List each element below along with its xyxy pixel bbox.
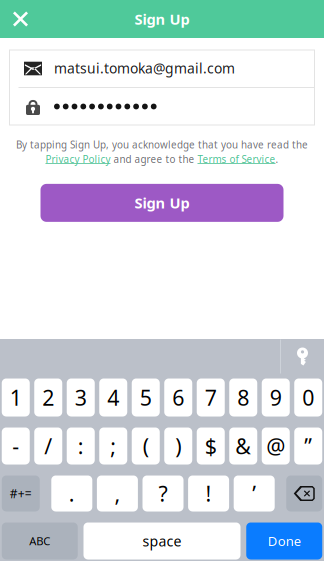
button[interactable]: space <box>83 522 240 559</box>
button[interactable]: ABC <box>2 522 78 559</box>
staticText: ? <box>158 479 167 508</box>
button[interactable]: ” <box>294 427 322 464</box>
staticText: 4 <box>107 383 119 412</box>
button[interactable]: Close <box>0 0 41 38</box>
button[interactable]: & <box>229 427 257 464</box>
button[interactable]: : <box>67 427 95 464</box>
staticText: 7 <box>205 383 217 412</box>
staticText: $ <box>205 431 217 461</box>
staticText: 8 <box>237 383 249 412</box>
button[interactable]: . <box>51 475 92 511</box>
staticText: Sign Up <box>134 193 189 213</box>
staticText: Done <box>268 532 301 550</box>
staticText: @ <box>266 431 285 461</box>
staticText: ’ <box>252 479 256 508</box>
staticText: / <box>44 431 52 461</box>
button[interactable]: / <box>34 427 62 464</box>
staticText: - <box>12 431 19 461</box>
button[interactable]: ! <box>188 475 229 511</box>
button[interactable]: Privacy Policy <box>45 152 110 166</box>
staticText: ( <box>143 431 149 461</box>
staticText: 9 <box>270 383 282 412</box>
staticText: : <box>78 431 84 461</box>
staticText: ” <box>304 431 312 461</box>
button[interactable]: $ <box>197 427 225 464</box>
staticText: 5 <box>140 383 152 412</box>
button[interactable]: 0 <box>294 378 322 416</box>
staticText: . <box>275 152 278 166</box>
button[interactable]: ( <box>132 427 160 464</box>
staticText: and agree to the <box>110 152 197 166</box>
staticText: Privacy Policy <box>45 152 110 166</box>
button[interactable]: ) <box>164 427 192 464</box>
staticText: & <box>235 431 251 461</box>
button[interactable]: 6 <box>164 378 192 416</box>
staticText: 6 <box>172 383 184 412</box>
button[interactable]: #+= <box>2 475 40 511</box>
staticText: 0 <box>302 383 314 412</box>
staticText: 2 <box>42 383 54 412</box>
button[interactable]: 5 <box>132 378 160 416</box>
button[interactable]: ’ <box>234 475 275 511</box>
staticText: By tapping Sign Up, you acknowledge that… <box>16 138 308 151</box>
button[interactable]: 4 <box>99 378 127 416</box>
staticText: ABC <box>29 533 50 549</box>
staticText: ! <box>206 479 212 508</box>
staticText: ; <box>110 431 116 461</box>
staticText: Terms of Service <box>197 152 275 166</box>
button[interactable]: 1 <box>2 378 30 416</box>
staticText: space <box>142 531 181 551</box>
staticText: 3 <box>75 383 87 412</box>
button[interactable]: Sign Up <box>40 184 283 222</box>
button[interactable]: Delete <box>286 475 322 511</box>
button[interactable]: 8 <box>229 378 257 416</box>
button[interactable]: 3 <box>67 378 95 416</box>
button[interactable]: ; <box>99 427 127 464</box>
button[interactable]: Terms of Service <box>197 152 275 166</box>
button[interactable]: @ <box>262 427 290 464</box>
staticText: . <box>69 479 75 508</box>
button[interactable]: Passwords <box>281 338 324 374</box>
button[interactable]: , <box>97 475 138 511</box>
staticText: , <box>114 479 120 508</box>
button[interactable]: 2 <box>34 378 62 416</box>
staticText: 1 <box>10 383 22 412</box>
staticText: Sign Up <box>134 9 189 29</box>
button[interactable]: 9 <box>262 378 290 416</box>
button[interactable]: 7 <box>197 378 225 416</box>
staticText: ) <box>175 431 181 461</box>
button[interactable]: - <box>2 427 30 464</box>
button[interactable]: ? <box>142 475 183 511</box>
staticText: #+= <box>10 485 32 502</box>
staticText: matsui.tomoka@gmail.com <box>54 59 235 77</box>
button[interactable]: Done <box>246 522 322 559</box>
